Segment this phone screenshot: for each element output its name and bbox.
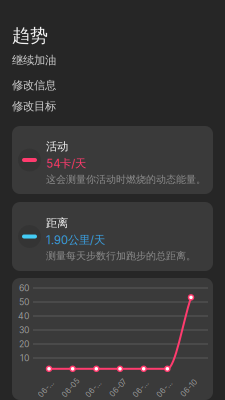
staticText: 06-08: [131, 384, 153, 392]
staticText: 测量每天步数行加跑步的总距离。: [46, 250, 196, 262]
staticText: 06-09: [154, 384, 176, 392]
staticText: 06-10: [178, 384, 199, 392]
staticText: 趋势: [12, 24, 48, 47]
button[interactable]: 继续加油: [0, 53, 225, 78]
staticText: 1.90公里/天: [46, 233, 105, 247]
staticText: 活动: [46, 139, 68, 154]
staticText: 距离: [46, 216, 68, 230]
staticText: 30: [19, 325, 29, 335]
button[interactable]: 修改信息: [0, 78, 225, 99]
staticText: 20: [19, 339, 29, 349]
button[interactable]: 修改目标: [0, 99, 225, 120]
staticText: 这会测量你活动时燃烧的动态能量。: [46, 173, 206, 186]
staticText: 06-05: [60, 384, 82, 392]
staticText: 修改信息: [12, 78, 56, 92]
staticText: 06-07: [107, 384, 128, 392]
staticText: 修改目标: [12, 99, 56, 113]
staticText: 06-06: [83, 384, 105, 392]
button[interactable]: 活动: [12, 126, 213, 194]
staticText: 50: [19, 297, 29, 307]
staticText: 54卡/天: [46, 156, 86, 171]
button[interactable]: 距离: [12, 202, 213, 271]
staticText: 10: [20, 353, 29, 363]
staticText: 60: [19, 283, 29, 293]
staticText: 40: [18, 311, 29, 321]
staticText: 继续加油: [12, 53, 56, 67]
staticText: 06-04: [36, 384, 58, 392]
